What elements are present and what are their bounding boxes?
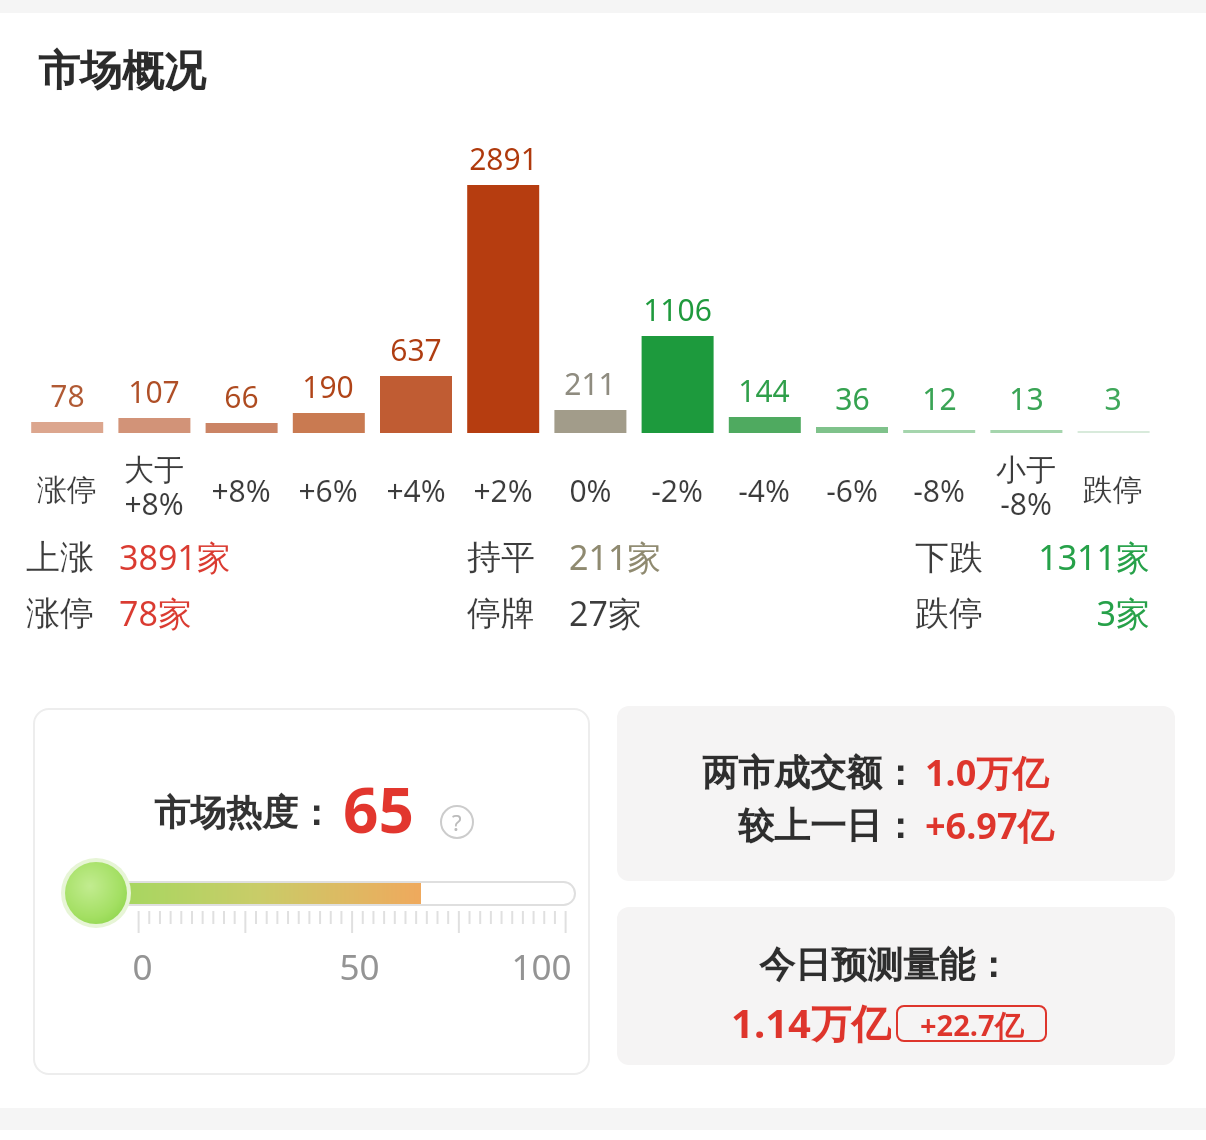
staticText: 2891 xyxy=(469,138,538,179)
staticText: +8% xyxy=(211,470,271,511)
button[interactable] xyxy=(33,708,590,1075)
staticText: 1.14万亿 xyxy=(731,995,891,1049)
button[interactable]: ? xyxy=(440,805,474,839)
staticText: 市场概况 xyxy=(38,45,206,98)
staticText: 1106 xyxy=(643,289,712,330)
staticText: 涨停 xyxy=(26,592,94,635)
staticText: 3891家 xyxy=(119,534,231,580)
staticText: 50 xyxy=(339,943,380,991)
staticText: 涨停 xyxy=(37,471,97,509)
staticText: 小于 -8% xyxy=(996,451,1056,523)
staticText: 190 xyxy=(302,366,354,407)
staticText: -6% xyxy=(826,470,878,511)
staticText: 1.0万亿 xyxy=(925,748,1049,797)
staticText: 144 xyxy=(738,370,790,411)
staticText: 上涨 xyxy=(26,536,94,579)
staticText: 3家 xyxy=(1096,590,1150,636)
staticText: 1311家 xyxy=(1038,534,1150,580)
staticText: 下跌 xyxy=(915,536,983,579)
staticText: 107 xyxy=(128,371,180,412)
staticText: 持平 xyxy=(467,536,535,579)
staticText: 211家 xyxy=(569,534,662,580)
staticText: 今日预测量能： xyxy=(759,942,1011,987)
staticText: 跌停 xyxy=(915,592,983,635)
staticText: 停牌 xyxy=(467,592,535,635)
staticText: 较上一日： xyxy=(738,803,918,848)
staticText: 市场热度： xyxy=(154,790,334,835)
staticText: ? xyxy=(452,807,462,837)
staticText: 78家 xyxy=(119,590,192,636)
staticText: 13 xyxy=(1009,378,1044,419)
staticText: +4% xyxy=(386,470,446,511)
staticText: 0 xyxy=(132,943,153,991)
staticText: 跌停 xyxy=(1083,471,1143,509)
staticText: -2% xyxy=(651,470,703,511)
staticText: 27家 xyxy=(569,590,642,636)
staticText: 36 xyxy=(835,378,870,419)
staticText: 大于 +8% xyxy=(124,451,184,523)
staticText: 12 xyxy=(922,378,957,419)
staticText: 0% xyxy=(569,470,612,511)
staticText: -8% xyxy=(913,470,965,511)
staticText: 78 xyxy=(50,375,85,416)
staticText: 65 xyxy=(343,767,414,851)
button[interactable]: +22.7亿 xyxy=(896,1005,1047,1042)
staticText: 637 xyxy=(390,329,442,370)
staticText: 66 xyxy=(224,376,259,417)
staticText: 两市成交额： xyxy=(702,750,918,795)
staticText: +6% xyxy=(298,470,358,511)
button[interactable] xyxy=(617,907,1175,1065)
staticText: 100 xyxy=(511,943,572,991)
button[interactable] xyxy=(617,706,1175,881)
staticText: +22.7亿 xyxy=(920,1005,1024,1042)
staticText: -4% xyxy=(738,470,790,511)
staticText: +2% xyxy=(473,470,533,511)
staticText: +6.97亿 xyxy=(925,801,1054,850)
staticText: 211 xyxy=(564,363,616,404)
staticText: 3 xyxy=(1104,378,1122,419)
